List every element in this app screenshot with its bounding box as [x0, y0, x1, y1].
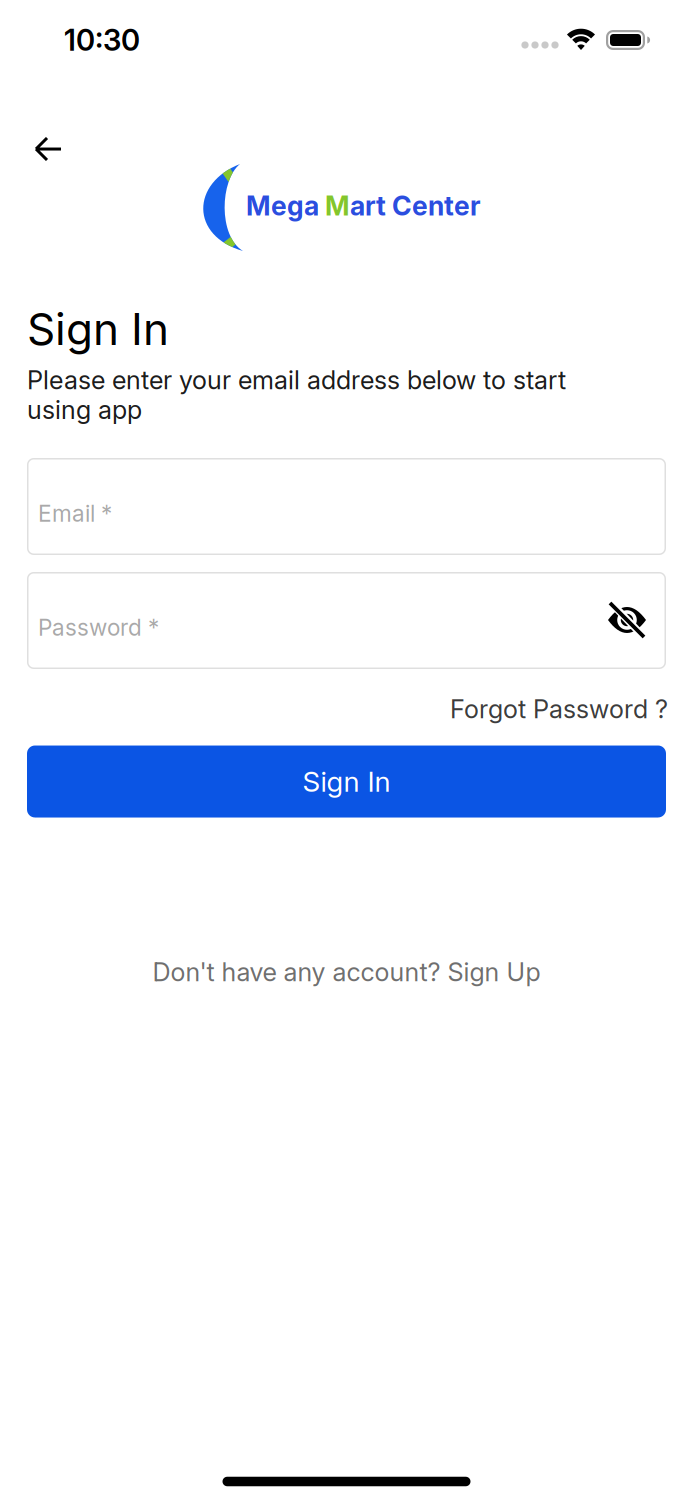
staticText: using app: [27, 395, 142, 425]
button[interactable]: Show password: [605, 598, 649, 642]
button[interactable]: Sign In: [27, 745, 666, 817]
button[interactable]: Forgot Password ?: [450, 694, 668, 724]
button[interactable]: Email *: [27, 458, 666, 555]
staticText: Email *: [38, 500, 112, 527]
staticText: Password *: [38, 614, 159, 641]
button[interactable]: Password *: [27, 572, 666, 669]
staticText: Forgot Password ?: [450, 694, 668, 724]
staticText: Please enter your email address below to…: [27, 365, 566, 395]
button[interactable]: Back: [26, 128, 70, 172]
staticText: M: [325, 190, 350, 221]
staticText: Don't have any account? Sign Up: [152, 957, 540, 987]
staticText: art Center: [350, 190, 481, 221]
staticText: Mega: [246, 190, 325, 221]
button[interactable]: Don't have any account? Sign Up: [152, 957, 540, 987]
staticText: 10:30: [64, 23, 140, 57]
staticText: Sign In: [302, 765, 390, 798]
staticText: Sign In: [27, 303, 169, 355]
